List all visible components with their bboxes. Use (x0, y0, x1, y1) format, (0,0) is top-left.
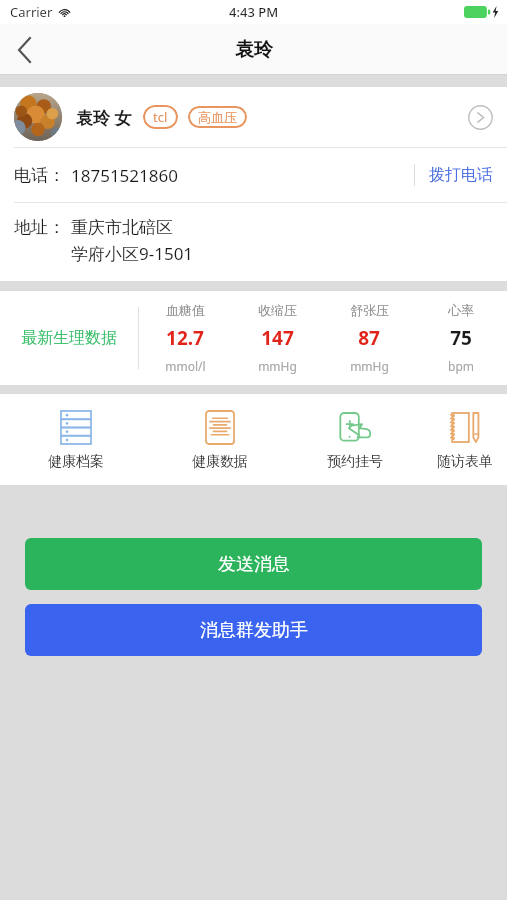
button[interactable]: 血糖值 (139, 291, 231, 385)
staticText: 预约挂号 (327, 453, 383, 471)
button[interactable]: 发送消息 (25, 538, 482, 590)
staticText: mmHg (350, 358, 389, 374)
staticText: 75 (450, 325, 472, 351)
staticText: 12.7 (166, 325, 204, 351)
staticText: 重庆市北碚区 (71, 217, 173, 238)
staticText: mmol/l (165, 358, 206, 374)
button[interactable]: tcl (143, 105, 178, 129)
staticText: 消息群发助手 (200, 619, 308, 642)
staticText: 地址： (14, 217, 65, 238)
staticText: bpm (448, 358, 474, 374)
staticText: 高血压 (198, 109, 237, 125)
button[interactable]: 袁玲 女 (0, 87, 507, 147)
button[interactable]: 预约挂号 (287, 394, 422, 485)
staticText: 147 (261, 325, 294, 351)
button[interactable]: Back (0, 26, 48, 74)
staticText: 拨打电话 (429, 165, 493, 185)
staticText: 血糖值 (166, 302, 205, 318)
button[interactable]: 健康档案 (0, 394, 152, 485)
button[interactable]: 心率 (415, 291, 507, 385)
staticText: 87 (358, 325, 380, 351)
staticText: 收缩压 (258, 302, 297, 318)
staticText: 袁玲 (235, 38, 273, 62)
staticText: mmHg (258, 358, 297, 374)
button[interactable]: 舒张压 (323, 291, 415, 385)
button[interactable]: 高血压 (188, 106, 247, 128)
button[interactable]: 收缩压 (231, 291, 323, 385)
staticText: tcl (153, 108, 168, 126)
staticText: 发送消息 (218, 553, 290, 576)
staticText: 心率 (448, 302, 474, 318)
staticText: 最新生理数据 (21, 328, 117, 348)
staticText: 4:43 PM (229, 3, 279, 21)
staticText: Carrier (10, 3, 53, 21)
button[interactable]: 拨打电话 (415, 148, 507, 202)
button[interactable]: 随访表单 (422, 394, 507, 485)
button[interactable]: 消息群发助手 (25, 604, 482, 656)
button[interactable]: 健康数据 (152, 394, 287, 485)
staticText: 电话： (14, 165, 65, 186)
staticText: 健康数据 (192, 453, 248, 471)
staticText: 18751521860 (71, 164, 178, 187)
staticText: 健康档案 (48, 453, 104, 471)
staticText: 随访表单 (437, 453, 493, 471)
staticText: 袁玲 女 (76, 106, 132, 129)
staticText: 学府小区9-1501 (71, 242, 194, 265)
staticText: 舒张压 (350, 302, 389, 318)
